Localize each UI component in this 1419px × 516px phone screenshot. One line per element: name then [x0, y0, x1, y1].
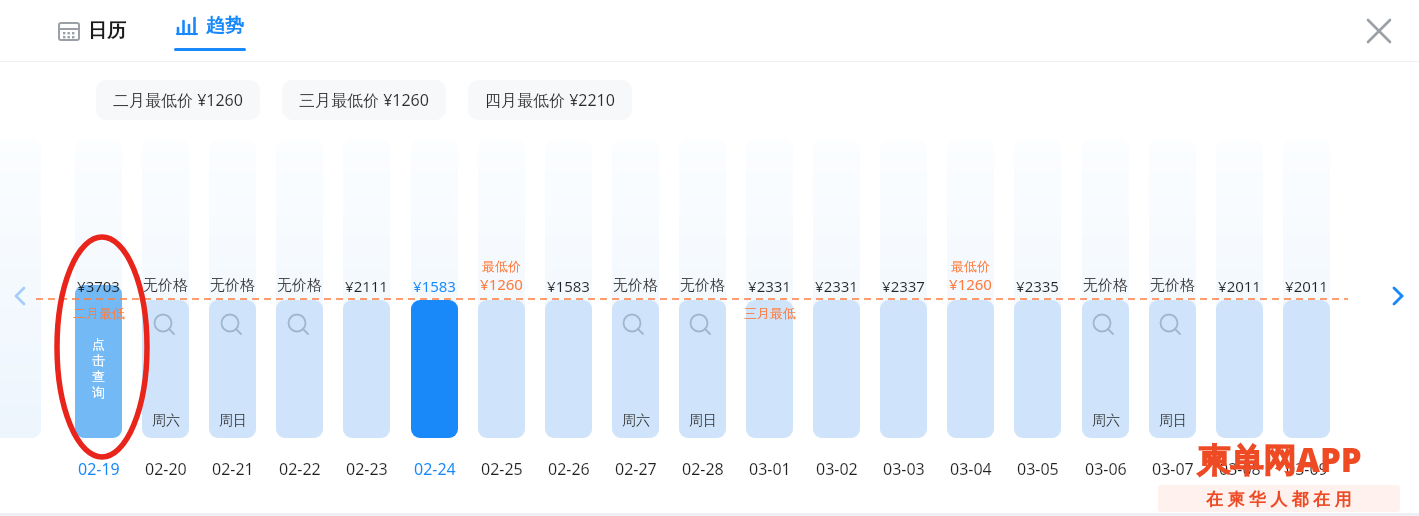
staticText: 击	[92, 352, 105, 368]
staticText: ¥2335	[1016, 276, 1059, 296]
staticText: ¥2331	[815, 276, 858, 296]
staticText: 无价格	[210, 276, 255, 295]
button[interactable]: 三月最低价 ¥1260	[282, 80, 446, 120]
staticText: 二月最低价 ¥1260	[113, 89, 243, 111]
staticText: ¥2111	[345, 276, 388, 296]
staticText: 四月最低价 ¥2210	[485, 89, 615, 111]
staticText: 03-01	[749, 458, 791, 480]
staticText: 三月最低	[744, 305, 796, 321]
staticText: ¥1583	[547, 276, 590, 296]
staticText: 最低价	[951, 258, 990, 274]
button[interactable]	[478, 140, 525, 438]
button[interactable]: 下一页	[1377, 236, 1419, 356]
staticText: 点	[92, 336, 105, 352]
staticText: 02-24	[414, 458, 456, 480]
button[interactable]: 四月最低价 ¥2210	[468, 80, 632, 120]
button[interactable]	[276, 140, 323, 438]
button[interactable]	[411, 140, 458, 438]
staticText: 无价格	[1083, 276, 1128, 295]
staticText: 询	[92, 384, 105, 400]
button[interactable]	[1283, 140, 1330, 438]
staticText: 02-22	[279, 458, 321, 480]
staticText: 03-07	[1152, 458, 1194, 480]
staticText: 周六	[622, 412, 650, 430]
staticText: 无价格	[613, 276, 658, 295]
staticText: 无价格	[1150, 276, 1195, 295]
staticText: 02-26	[548, 458, 590, 480]
button[interactable]: 趋势	[170, 10, 250, 42]
staticText: ¥3703	[77, 276, 120, 296]
staticText: ¥2337	[882, 276, 925, 296]
staticText: 03-03	[883, 458, 925, 480]
staticText: 02-28	[682, 458, 724, 480]
button[interactable]: 上一页	[0, 236, 42, 356]
staticText: 02-25	[481, 458, 523, 480]
staticText: 02-27	[615, 458, 657, 480]
staticText: 周六	[152, 412, 180, 430]
staticText: ¥1260	[949, 274, 992, 294]
staticText: ¥2331	[748, 276, 791, 296]
staticText: 无价格	[680, 276, 725, 295]
staticText: 周日	[1159, 412, 1187, 430]
staticText: 03-09	[1286, 458, 1328, 480]
staticText: 二月最低	[73, 305, 125, 321]
button[interactable]: 二月最低价 ¥1260	[96, 80, 260, 120]
staticText: 03-05	[1017, 458, 1059, 480]
button[interactable]	[1014, 140, 1061, 438]
staticText: 02-23	[346, 458, 388, 480]
staticText: 无价格	[277, 276, 322, 295]
button[interactable]	[142, 140, 189, 438]
button[interactable]	[813, 140, 860, 438]
staticText: 02-21	[212, 458, 254, 480]
staticText: 03-06	[1085, 458, 1127, 480]
staticText: 周日	[219, 412, 247, 430]
button[interactable]	[947, 140, 994, 438]
button[interactable]	[1149, 140, 1196, 438]
button[interactable]	[75, 140, 122, 438]
button[interactable]	[343, 140, 390, 438]
staticText: 03-02	[816, 458, 858, 480]
staticText: 周六	[1092, 412, 1120, 430]
staticText: 趋势	[206, 14, 244, 38]
staticText: 周日	[689, 412, 717, 430]
button[interactable]	[612, 140, 659, 438]
button[interactable]	[1216, 140, 1263, 438]
staticText: 最低价	[482, 258, 521, 274]
staticText: 日历	[88, 19, 126, 43]
staticText: 03-08	[1219, 458, 1261, 480]
staticText: 柬单网APP	[1197, 437, 1362, 482]
staticText: ¥1583	[413, 276, 456, 296]
button[interactable]	[545, 140, 592, 438]
button[interactable]	[1082, 140, 1129, 438]
button[interactable]	[746, 140, 793, 438]
staticText: 02-19	[78, 458, 120, 480]
staticText: ¥1260	[480, 274, 523, 294]
staticText: 三月最低价 ¥1260	[299, 89, 429, 111]
staticText: 02-20	[145, 458, 187, 480]
button[interactable]	[209, 140, 256, 438]
staticText: 在 柬 华 人 都 在 用	[1206, 487, 1352, 510]
button[interactable]: 日历	[52, 13, 132, 49]
staticText: 无价格	[143, 276, 188, 295]
staticText: 03-04	[950, 458, 992, 480]
button[interactable]	[679, 140, 726, 438]
button[interactable]	[880, 140, 927, 438]
staticText: ¥2011	[1285, 276, 1328, 296]
button[interactable]: 关闭	[1359, 11, 1399, 51]
staticText: 查	[92, 368, 105, 384]
staticText: ¥2011	[1218, 276, 1261, 296]
